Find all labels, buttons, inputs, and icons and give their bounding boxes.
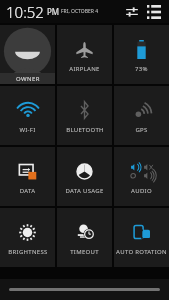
staticText: GPS [135, 126, 148, 134]
staticText: FRI, OCTOBER 4 [61, 8, 98, 15]
button[interactable]: Notifications list [146, 4, 162, 20]
button[interactable]: Airplane mode [57, 25, 112, 84]
button[interactable]: Bluetooth [57, 86, 112, 145]
staticText: 73% [135, 65, 148, 73]
staticText: BRIGHTNESS [8, 248, 48, 256]
button[interactable]: Data usage [57, 147, 112, 206]
staticText: TIMEOUT [70, 248, 99, 256]
button[interactable]: Data connection [0, 147, 55, 206]
button[interactable]: Screen timeout [57, 208, 112, 267]
button[interactable]: Battery [114, 25, 169, 84]
staticText: BLUETOOTH [66, 126, 104, 134]
staticText: 10:52 [6, 2, 44, 22]
staticText: PM [47, 6, 60, 17]
staticText: DATA USAGE [65, 187, 104, 195]
button[interactable]: Auto rotation [114, 208, 169, 267]
staticText: WI-FI [19, 126, 36, 134]
button[interactable]: Owner profile [0, 25, 55, 84]
staticText: AUDIO PROFILES [116, 187, 167, 195]
staticText: AUTO ROTATION [116, 248, 167, 256]
staticText: OWNER [16, 75, 40, 83]
button[interactable]: Brightness [0, 208, 55, 267]
button[interactable]: Audio profiles [114, 147, 169, 206]
button[interactable]: Wi-Fi [0, 86, 55, 145]
staticText: DATA CONNECTION [2, 187, 53, 195]
staticText: AIRPLANE MODE [59, 65, 110, 73]
button[interactable]: Settings [124, 4, 140, 20]
button[interactable]: GPS [114, 86, 169, 145]
